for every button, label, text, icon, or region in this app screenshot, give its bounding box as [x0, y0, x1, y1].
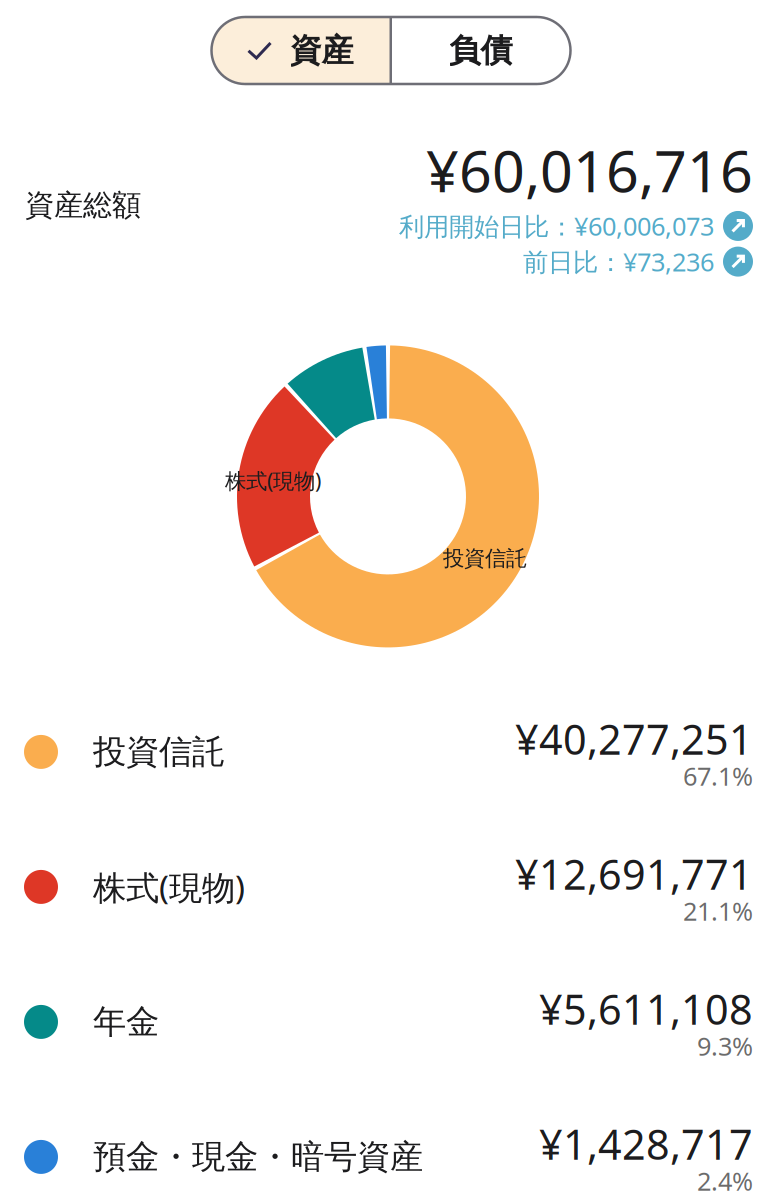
staticText: 利用開始日比：¥60,006,073: [399, 209, 714, 243]
staticText: 負債: [448, 31, 512, 70]
staticText: 67.1%: [683, 759, 753, 793]
staticText: 21.1%: [683, 894, 753, 928]
button[interactable]: 投資信託: [0, 684, 782, 819]
staticText: 前日比：¥73,236: [523, 245, 714, 278]
staticText: ¥12,691,771: [515, 846, 753, 901]
staticText: 預金・現金・暗号資産: [93, 1136, 423, 1177]
button[interactable]: 前日比：¥73,236: [523, 245, 753, 278]
button[interactable]: 年金: [0, 954, 782, 1089]
staticText: 投資信託: [443, 545, 527, 571]
button[interactable]: 株式(現物): [0, 819, 782, 954]
staticText: ¥5,611,108: [539, 981, 753, 1036]
staticText: ¥1,428,717: [539, 1116, 753, 1171]
staticText: ¥60,016,716: [426, 132, 753, 208]
staticText: 2.4%: [697, 1164, 753, 1198]
staticText: 資産: [289, 31, 353, 70]
button[interactable]: 負債: [390, 17, 570, 84]
button[interactable]: 資産: [211, 17, 390, 84]
staticText: ¥40,277,251: [515, 711, 753, 766]
staticText: 株式(現物): [225, 466, 321, 495]
staticText: 株式(現物): [93, 865, 245, 909]
staticText: 資産総額: [25, 187, 141, 223]
button[interactable]: 預金・現金・暗号資産: [0, 1089, 782, 1200]
button[interactable]: 利用開始日比：¥60,006,073: [399, 209, 753, 243]
staticText: 年金: [93, 1001, 159, 1042]
staticText: 投資信託: [93, 731, 225, 772]
staticText: 9.3%: [697, 1029, 753, 1063]
